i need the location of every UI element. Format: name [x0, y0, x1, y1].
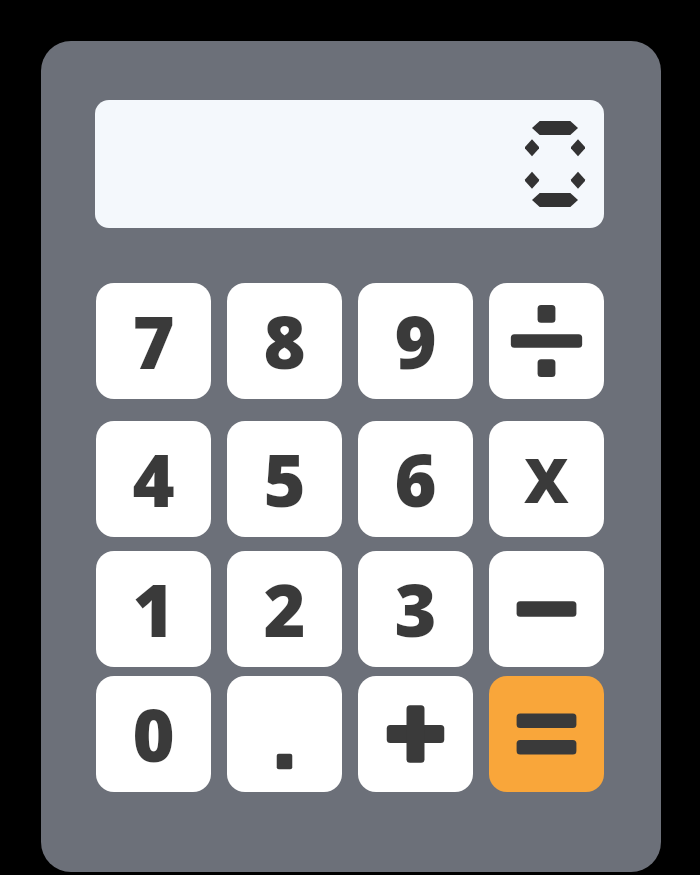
staticText: 8 [263, 292, 306, 390]
button[interactable]: Decimal point [227, 676, 342, 792]
staticText: 0 [132, 685, 175, 783]
button[interactable]: Six [358, 421, 473, 537]
button[interactable]: Nine [358, 283, 473, 399]
button[interactable]: Plus [358, 676, 473, 792]
button[interactable]: Divide [489, 283, 604, 399]
button[interactable]: Three [358, 551, 473, 667]
button[interactable]: Two [227, 551, 342, 667]
staticText: X [524, 437, 569, 521]
button[interactable]: Multiply [489, 421, 604, 537]
button[interactable]: Seven [96, 283, 211, 399]
button[interactable]: Five [227, 421, 342, 537]
staticText: 6 [394, 430, 437, 528]
staticText: 5 [263, 430, 306, 528]
button[interactable]: Equals [489, 676, 604, 792]
button[interactable]: Four [96, 421, 211, 537]
button[interactable]: Zero [96, 676, 211, 792]
staticText: 4 [132, 430, 175, 528]
staticText: 1 [132, 560, 175, 658]
staticText: 3 [394, 560, 437, 658]
button[interactable]: Eight [227, 283, 342, 399]
button[interactable]: One [96, 551, 211, 667]
button[interactable]: Minus [489, 551, 604, 667]
staticText: 7 [132, 292, 175, 390]
staticText: 9 [394, 292, 437, 390]
staticText: 2 [263, 560, 306, 658]
